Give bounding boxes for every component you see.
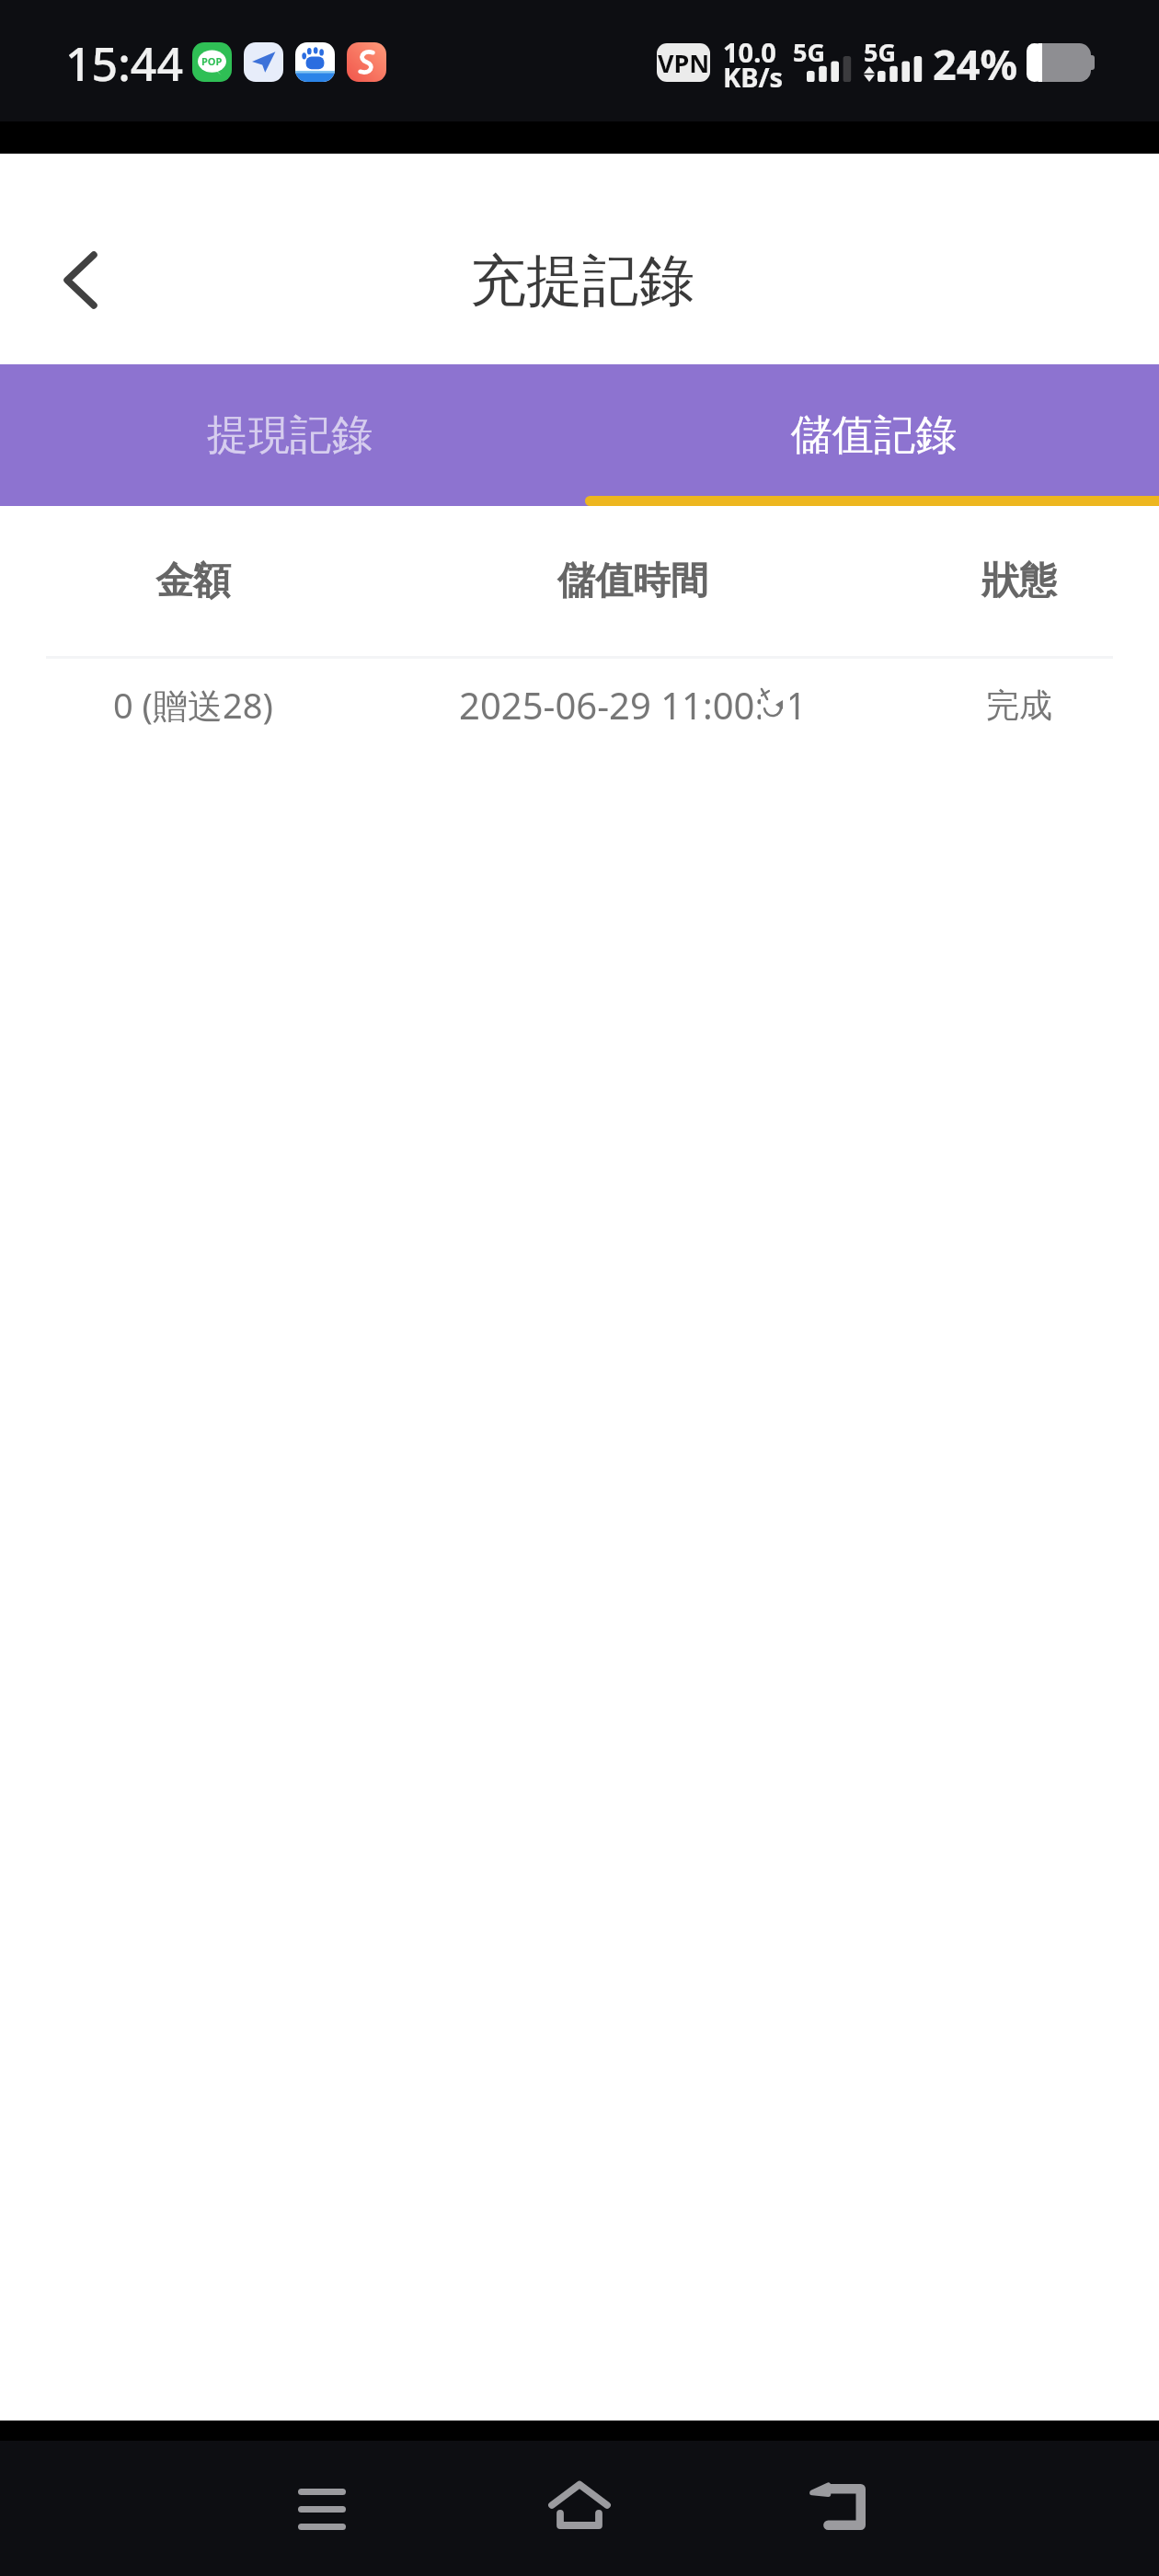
button[interactable]: 0 (贈送28): [0, 659, 1159, 751]
staticText: 金額: [155, 558, 231, 605]
staticText: POP: [201, 54, 223, 68]
staticText: KB/s: [723, 59, 784, 95]
staticText: 10.0: [723, 34, 776, 70]
staticText: 儲值時間: [557, 558, 708, 605]
staticText: 充提記錄: [470, 246, 694, 316]
staticText: 儲值記錄: [791, 409, 957, 462]
staticText: 15:44: [65, 32, 183, 95]
staticText: 狀態: [981, 558, 1057, 605]
button[interactable]: Back: [775, 2443, 903, 2571]
staticText: 5G: [864, 35, 896, 69]
staticText: VPN: [658, 46, 710, 80]
button[interactable]: Back: [38, 237, 122, 322]
button[interactable]: 儲值記錄: [579, 364, 1159, 506]
button[interactable]: Home: [515, 2441, 644, 2570]
staticText: 24%: [933, 36, 1018, 92]
button[interactable]: 提現記錄: [0, 364, 579, 506]
staticText: 提現記錄: [207, 409, 373, 462]
staticText: 5G: [793, 35, 825, 69]
staticText: 0 (贈送28): [113, 681, 273, 729]
staticText: 完成: [986, 684, 1052, 726]
staticText: 2025-06-29 11:00:01: [459, 680, 807, 730]
button[interactable]: Recent apps: [258, 2444, 386, 2573]
